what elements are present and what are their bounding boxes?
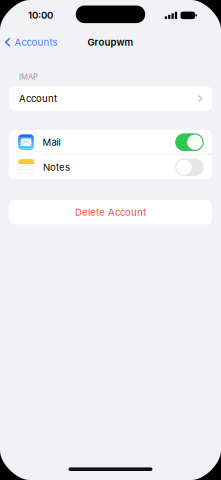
staticText: Delete Account bbox=[75, 206, 146, 218]
staticText: Notes bbox=[43, 161, 70, 173]
button[interactable]: Accounts bbox=[0, 31, 64, 53]
button[interactable]: Account bbox=[9, 86, 212, 111]
button[interactable]: Enabled bbox=[175, 133, 204, 151]
button[interactable]: Notes bbox=[9, 155, 212, 179]
button[interactable]: Delete Account bbox=[9, 200, 212, 224]
staticText: Groupwm bbox=[87, 36, 133, 48]
staticText: 10:00 bbox=[28, 9, 53, 21]
staticText: Mail bbox=[42, 136, 60, 148]
staticText: IMAP bbox=[19, 72, 38, 81]
staticText: Account bbox=[19, 93, 57, 104]
button[interactable]: Disabled bbox=[175, 158, 204, 176]
staticText: Accounts bbox=[15, 36, 58, 48]
button[interactable]: Mail bbox=[9, 130, 212, 154]
